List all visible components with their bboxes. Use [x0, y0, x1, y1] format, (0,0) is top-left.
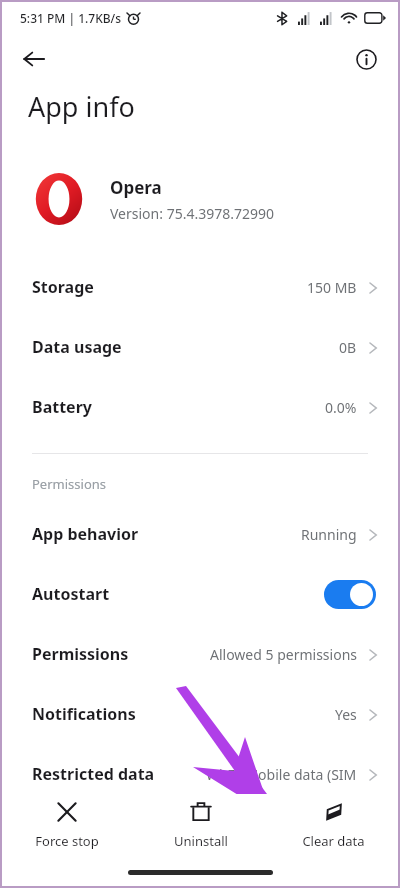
staticText: Clear data: [302, 832, 365, 850]
button[interactable]: App behavior: [0, 504, 400, 564]
button[interactable]: Storage: [0, 257, 400, 317]
staticText: Autostart: [32, 583, 110, 605]
button[interactable]: Uninstall: [134, 796, 267, 854]
button[interactable]: Data usage: [0, 317, 400, 377]
button[interactable]: Clear data: [267, 796, 400, 854]
button[interactable]: App details: [346, 39, 386, 79]
staticText: Uninstall: [174, 832, 228, 850]
staticText: Storage: [32, 276, 94, 298]
staticText: Allowed 5 permissions: [210, 645, 357, 664]
staticText: 5:31 PM | 1.7KB/s: [20, 10, 122, 26]
button[interactable]: Force stop: [0, 796, 134, 854]
staticText: Notifications: [32, 703, 136, 725]
staticText: Permissions: [32, 475, 107, 493]
staticText: Wi-Fi, Mobile data (SIM: [206, 765, 357, 784]
staticText: Force stop: [35, 832, 99, 850]
staticText: Version: 75.4.3978.72990: [110, 204, 274, 223]
staticText: Opera: [110, 176, 162, 199]
button[interactable]: Restricted data: [0, 744, 400, 804]
staticText: App behavior: [32, 523, 139, 545]
staticText: Restricted data: [32, 763, 155, 785]
button[interactable]: Battery: [0, 377, 400, 437]
staticText: 0B: [339, 338, 357, 357]
button[interactable]: Autostart: [0, 564, 400, 624]
staticText: Data usage: [32, 336, 122, 358]
staticText: Yes: [335, 705, 357, 724]
button[interactable]: Permissions: [0, 624, 400, 684]
staticText: App info: [28, 88, 135, 125]
staticText: 150 MB: [307, 278, 357, 297]
button[interactable]: Notifications: [0, 684, 400, 744]
button[interactable]: Back: [12, 37, 56, 81]
staticText: Running: [301, 525, 357, 544]
staticText: 0.0%: [325, 398, 357, 417]
staticText: Battery: [32, 396, 92, 418]
staticText: Permissions: [32, 643, 129, 665]
